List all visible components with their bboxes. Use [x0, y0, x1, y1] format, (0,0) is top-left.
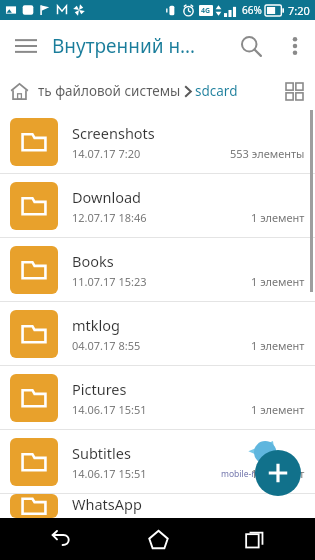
button[interactable]: More options: [275, 26, 315, 66]
staticText: Subtitles: [72, 443, 131, 463]
button[interactable]: Screenshots: [0, 110, 315, 173]
staticText: 11.07.17 15:23: [72, 274, 147, 289]
staticText: Books: [72, 251, 114, 271]
button[interactable]: mtklog: [0, 302, 315, 365]
staticText: 14.07.17 7:20: [72, 146, 141, 161]
staticText: 04.07.17 8:55: [72, 338, 141, 353]
staticText: 1 элемент: [251, 210, 305, 225]
staticText: 1 элемент: [251, 338, 305, 353]
staticText: 66%: [242, 3, 262, 17]
button[interactable]: Pictures: [0, 366, 315, 429]
button[interactable]: Home: [123, 518, 193, 560]
button[interactable]: Home directory: [0, 72, 38, 110]
staticText: WhatsApp: [72, 494, 142, 514]
staticText: 553 элементы: [230, 146, 305, 161]
staticText: Pictures: [72, 379, 127, 399]
button[interactable]: Books: [0, 238, 315, 301]
staticText: 4G: [201, 6, 211, 16]
staticText: mobile-review.com: [221, 468, 297, 480]
button[interactable]: sdcard: [195, 82, 238, 100]
staticText: 1 элемент: [251, 274, 305, 289]
button[interactable]: Recent apps: [219, 518, 289, 560]
button[interactable]: Subtitles: [0, 430, 315, 493]
button[interactable]: Create new: [255, 450, 301, 496]
staticText: Screenshots: [72, 123, 155, 143]
staticText: 1 элемент: [251, 402, 305, 417]
button[interactable]: WhatsApp: [0, 494, 315, 518]
button[interactable]: Download: [0, 174, 315, 237]
button[interactable]: Open navigation menu: [0, 20, 52, 72]
staticText: 1 элемент: [251, 466, 305, 481]
button[interactable]: ть файловой системы: [38, 82, 181, 100]
staticText: Внутренний н…: [52, 33, 227, 59]
button[interactable]: Switch to grid view: [275, 72, 313, 110]
staticText: 12.07.17 18:46: [72, 210, 147, 225]
staticText: 7:20: [288, 3, 310, 18]
button[interactable]: Back: [26, 518, 96, 560]
staticText: Download: [72, 187, 141, 207]
staticText: mtklog: [72, 315, 120, 335]
staticText: 14.06.17 15:51: [72, 466, 147, 481]
button[interactable]: Search: [227, 22, 275, 70]
staticText: 14.06.17 15:51: [72, 402, 147, 417]
